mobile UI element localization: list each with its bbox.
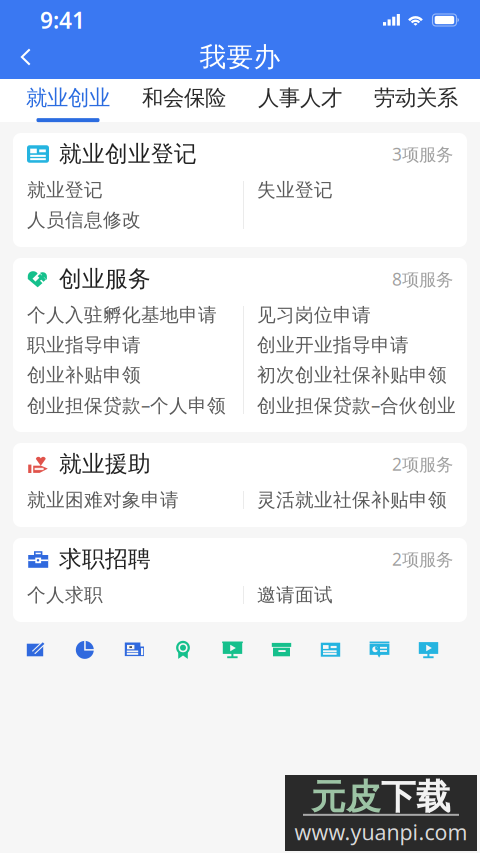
staticText: 创业担保贷款–合伙创业 xyxy=(257,393,456,417)
button[interactable]: 返回 xyxy=(0,36,47,78)
staticText: 就业困难对象申请 xyxy=(27,488,179,511)
button[interactable]: 初次创业社保补贴申领 xyxy=(243,360,467,390)
button[interactable]: 创业担保贷款–合伙创业 xyxy=(243,390,467,420)
staticText: 就业援助 xyxy=(59,450,151,478)
staticText: 元皮 xyxy=(311,775,381,818)
button[interactable]: 人事人才 xyxy=(242,74,358,127)
staticText: 创业服务 xyxy=(59,265,151,293)
staticText: www.yuanpi.com xyxy=(294,818,467,846)
button[interactable]: 填写 xyxy=(12,633,61,667)
button[interactable]: 创业补贴申领 xyxy=(13,360,243,390)
button[interactable]: 资讯 xyxy=(110,633,159,667)
staticText: 2项服务 xyxy=(392,547,453,570)
staticText: 人事人才 xyxy=(258,85,342,111)
staticText: 8项服务 xyxy=(392,267,453,290)
button[interactable]: 个人求职 xyxy=(13,580,243,610)
button[interactable]: 创业担保贷款–个人申领 xyxy=(13,390,243,420)
button[interactable]: 人员信息修改 xyxy=(13,205,243,235)
button[interactable]: 视频 xyxy=(208,633,257,667)
staticText: 就业创业登记 xyxy=(59,140,197,168)
button[interactable]: 证件 xyxy=(306,633,355,667)
staticText: 个人求职 xyxy=(27,583,103,606)
button[interactable]: 失业登记 xyxy=(243,175,467,205)
staticText: 求职招聘 xyxy=(59,545,151,573)
button[interactable]: 就业创业 xyxy=(10,74,126,127)
button[interactable]: 卡包 xyxy=(257,633,306,667)
staticText: 见习岗位申请 xyxy=(257,303,371,326)
button[interactable]: 职业指导申请 xyxy=(13,330,243,360)
staticText: 劳动关系 xyxy=(374,85,458,111)
button[interactable]: 统计 xyxy=(61,633,110,667)
staticText: 我要办 xyxy=(199,41,280,73)
button[interactable]: 消息 xyxy=(355,633,404,667)
staticText: 个人入驻孵化基地申请 xyxy=(27,303,217,326)
staticText: 就业创业 xyxy=(26,85,110,111)
button[interactable]: 认证 xyxy=(159,633,208,667)
button[interactable]: 个人入驻孵化基地申请 xyxy=(13,300,243,330)
staticText: 职业指导申请 xyxy=(27,333,141,356)
staticText: 灵活就业社保补贴申领 xyxy=(257,488,447,511)
button[interactable]: 见习岗位申请 xyxy=(243,300,467,330)
button[interactable]: 邀请面试 xyxy=(243,580,467,610)
button[interactable]: 创业开业指导申请 xyxy=(243,330,467,360)
staticText: 下载 xyxy=(381,775,451,818)
button[interactable]: 就业困难对象申请 xyxy=(13,485,243,515)
button[interactable]: 就业登记 xyxy=(13,175,243,205)
button[interactable]: 播放 xyxy=(404,633,453,667)
staticText: 创业补贴申领 xyxy=(27,363,141,386)
staticText: 人员信息修改 xyxy=(27,208,141,231)
staticText: 和会保险 xyxy=(142,85,226,111)
staticText: 创业开业指导申请 xyxy=(257,333,409,356)
staticText: 失业登记 xyxy=(257,178,333,201)
staticText: 邀请面试 xyxy=(257,583,333,606)
button[interactable]: 劳动关系 xyxy=(358,74,474,127)
staticText: 2项服务 xyxy=(392,452,453,475)
staticText: 9:41 xyxy=(40,5,85,35)
staticText: 3项服务 xyxy=(392,142,453,165)
staticText: 创业担保贷款–个人申领 xyxy=(27,393,226,417)
button[interactable]: 灵活就业社保补贴申领 xyxy=(243,485,467,515)
button[interactable]: 和会保险 xyxy=(126,74,242,127)
staticText: 初次创业社保补贴申领 xyxy=(257,363,447,386)
staticText: 就业登记 xyxy=(27,178,103,201)
